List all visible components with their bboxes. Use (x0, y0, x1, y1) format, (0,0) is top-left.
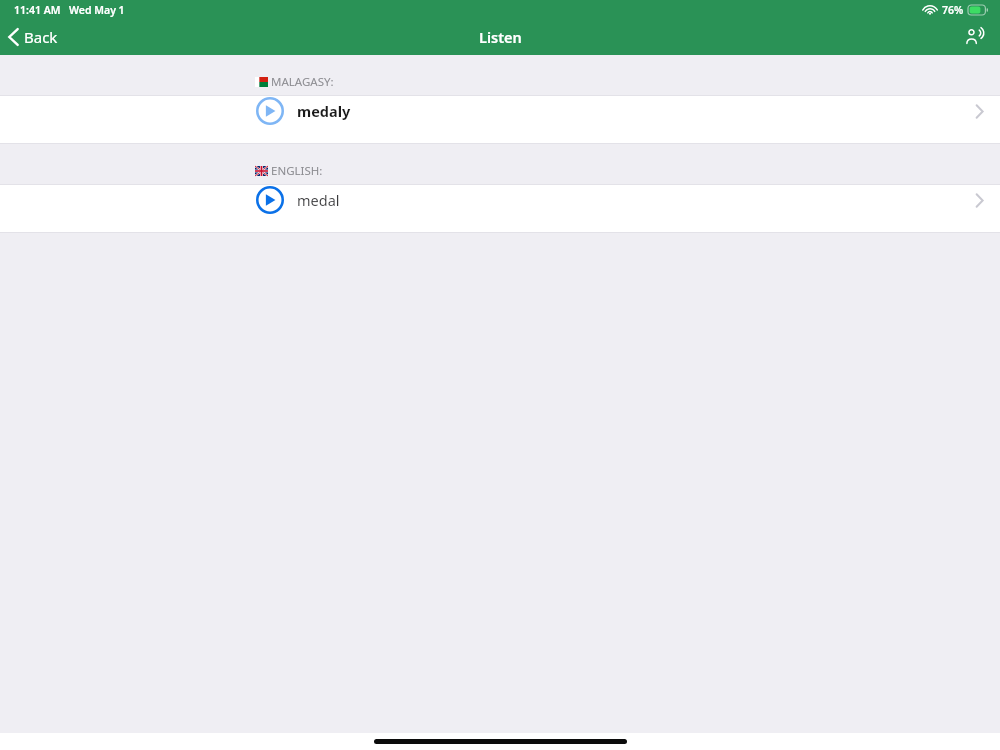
button[interactable]: Accessibility voice (960, 22, 990, 52)
staticText: Wed May 1 (69, 3, 125, 17)
button[interactable]: Play (0, 185, 1000, 233)
staticText: 76% (942, 3, 964, 17)
staticText: medaly (297, 101, 351, 121)
staticText: ENGLISH: (271, 163, 323, 179)
staticText: Listen (479, 27, 522, 47)
staticText: Back (24, 27, 58, 47)
staticText: 11:41 AM (14, 3, 61, 17)
staticText: MALAGASY: (271, 74, 334, 90)
button[interactable]: Play (255, 185, 285, 215)
staticText: medal (297, 190, 340, 210)
button[interactable]: Back (0, 23, 70, 51)
button[interactable]: Play (255, 96, 285, 126)
button[interactable]: Play (0, 96, 1000, 144)
